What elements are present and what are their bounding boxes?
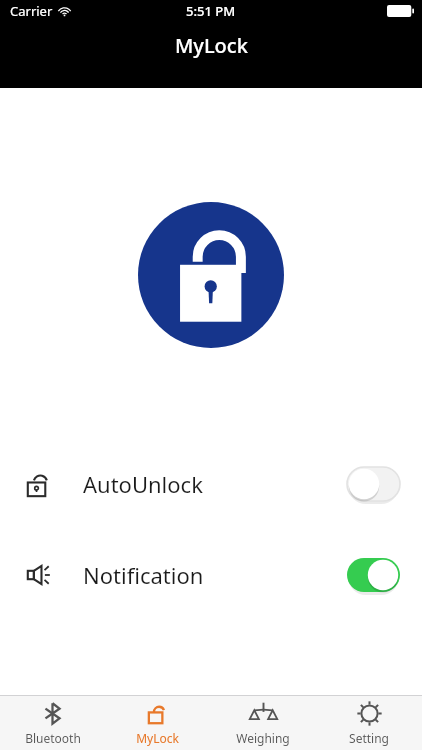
button[interactable]: Notification	[0, 547, 422, 603]
staticText: MyLock	[175, 32, 248, 59]
other: Notification	[24, 556, 62, 594]
button[interactable]: Auto unlock	[0, 456, 422, 512]
other: Auto unlock	[24, 465, 62, 503]
button[interactable]: AutoUnlock toggle	[347, 467, 400, 501]
staticText: Weighing	[236, 730, 290, 746]
staticText: 5:51 PM	[186, 2, 236, 20]
button[interactable]: Setting	[316, 695, 422, 750]
button[interactable]: Lock status: unlocked	[138, 202, 284, 348]
staticText: AutoUnlock	[83, 469, 203, 499]
staticText: MyLock	[136, 730, 179, 746]
staticText: Carrier	[10, 2, 53, 20]
staticText: Notification	[83, 560, 204, 590]
button[interactable]: Bluetooth	[0, 695, 105, 750]
staticText: Bluetooth	[25, 730, 81, 746]
button[interactable]: Notification toggle	[347, 558, 400, 592]
staticText: Setting	[349, 730, 389, 746]
button[interactable]: MyLock	[105, 695, 210, 750]
button[interactable]: Weighing	[210, 695, 316, 750]
